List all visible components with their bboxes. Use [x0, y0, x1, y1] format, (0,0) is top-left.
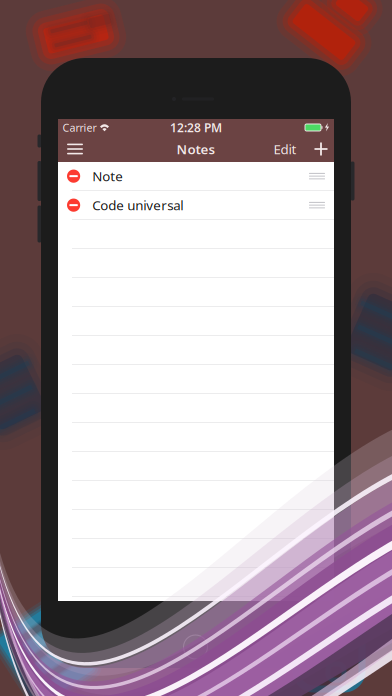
staticText: Notes	[176, 140, 215, 158]
staticText: Carrier	[62, 120, 96, 135]
button[interactable]: Code universal	[58, 191, 334, 220]
staticText: Note	[92, 167, 123, 185]
staticText: 12:28 PM	[170, 119, 222, 135]
staticText: Edit	[273, 140, 296, 158]
staticText: Code universal	[92, 196, 183, 214]
button[interactable]: Edit	[270, 136, 300, 162]
button[interactable]: Note	[58, 162, 334, 191]
button[interactable]: Menu	[60, 136, 90, 162]
button[interactable]: Add note	[310, 136, 332, 162]
